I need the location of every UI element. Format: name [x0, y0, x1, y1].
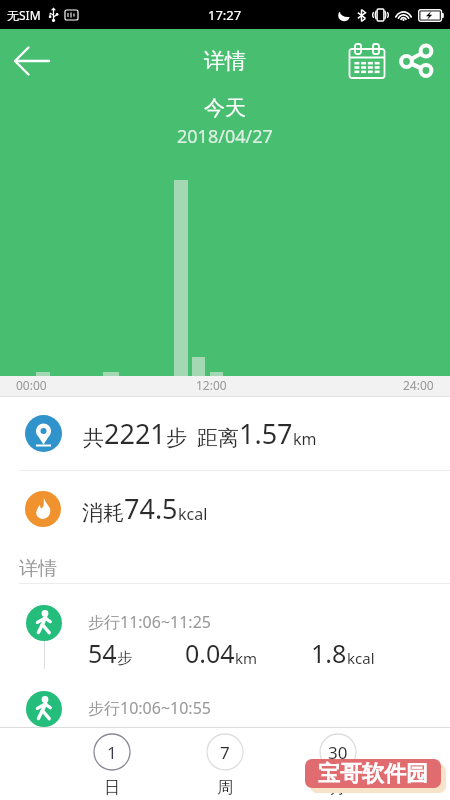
staticText: km: [235, 648, 258, 668]
staticText: 步: [166, 425, 187, 451]
staticText: 步: [117, 649, 132, 668]
button[interactable]: Calendar: [341, 35, 393, 87]
staticText: 12:00: [196, 377, 227, 393]
staticText: 共: [83, 425, 104, 451]
staticText: 消耗: [82, 500, 124, 526]
staticText: 00:00: [16, 377, 47, 393]
button[interactable]: Back: [6, 35, 58, 87]
staticText: 今天: [204, 95, 246, 121]
staticText: km: [293, 428, 317, 450]
staticText: 1: [107, 741, 117, 764]
staticText: 距离: [197, 425, 239, 451]
button[interactable]: 步行11:06~11:25: [0, 584, 450, 670]
staticText: 详情: [204, 48, 246, 74]
staticText: 74.5: [124, 490, 178, 527]
button[interactable]: 30: [281, 728, 394, 798]
staticText: 30: [328, 741, 348, 764]
button[interactable]: 共: [0, 397, 450, 470]
staticText: 0.04: [185, 636, 235, 670]
staticText: 2221: [104, 415, 166, 452]
button[interactable]: 7: [168, 728, 281, 798]
staticText: 周: [217, 778, 233, 798]
staticText: 24:00: [403, 377, 434, 393]
staticText: 1.57: [239, 415, 293, 452]
staticText: 详情: [19, 557, 57, 581]
staticText: 宝哥软件园: [318, 760, 428, 788]
button[interactable]: 消耗: [0, 471, 450, 546]
staticText: 步行10:06~10:55: [88, 697, 211, 719]
staticText: 17:27: [208, 6, 242, 24]
staticText: 54: [88, 636, 117, 670]
button[interactable]: Share: [393, 37, 441, 85]
staticText: kcal: [178, 503, 208, 525]
button[interactable]: 步行10:06~10:55: [0, 670, 450, 727]
staticText: 无SIM: [7, 7, 41, 23]
staticText: 月: [330, 778, 346, 798]
staticText: 日: [104, 778, 120, 798]
staticText: 2018/04/27: [177, 124, 273, 149]
staticText: 7: [220, 741, 230, 764]
staticText: kcal: [347, 648, 375, 668]
button[interactable]: 1: [56, 728, 168, 798]
staticText: 1.8: [311, 636, 347, 670]
staticText: 步行11:06~11:25: [88, 611, 211, 633]
